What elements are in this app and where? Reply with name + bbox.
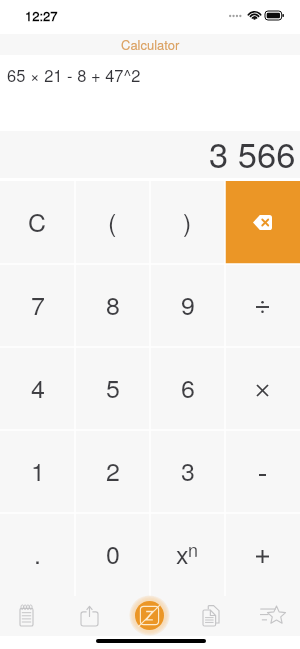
button[interactable]: Divide [225, 264, 300, 347]
button[interactable]: 9 [150, 264, 225, 347]
staticText: 5 [106, 369, 120, 405]
button[interactable]: 2 [75, 430, 150, 513]
button[interactable]: Minus [225, 430, 300, 513]
button[interactable]: 5 [75, 347, 150, 430]
staticText: 1 [31, 452, 45, 488]
staticText: 3 [181, 452, 195, 488]
button[interactable]: Plus [225, 513, 300, 596]
button[interactable]: Documents [190, 595, 232, 635]
staticText: n [188, 536, 199, 562]
button[interactable]: 8 [75, 264, 150, 347]
staticText: 7 [31, 286, 45, 322]
button[interactable]: 0 [75, 513, 150, 596]
other: Plus [256, 550, 269, 563]
staticText: 3 566 [209, 128, 296, 175]
other: Backspace [253, 215, 272, 230]
button[interactable]: Calculator [130, 596, 169, 635]
button[interactable]: 7 [0, 264, 75, 347]
staticText: C [28, 203, 47, 239]
other: Divide [256, 301, 269, 313]
staticText: x [176, 535, 189, 571]
staticText: 6 [181, 369, 195, 405]
button[interactable]: ( [75, 181, 150, 264]
staticText: 65 × 21 - 8 + 47^2 [7, 63, 141, 87]
button[interactable]: 1 [0, 430, 75, 513]
button[interactable]: 6 [150, 347, 225, 430]
button[interactable]: . [0, 513, 75, 596]
staticText: . [34, 535, 41, 571]
button[interactable]: Share [68, 596, 110, 636]
button[interactable]: 3 [150, 430, 225, 513]
button[interactable]: Favorites [252, 595, 294, 635]
staticText: 8 [106, 286, 120, 322]
staticText: 2 [106, 452, 120, 488]
button[interactable]: Backspace [225, 181, 300, 264]
button[interactable]: x [150, 513, 225, 596]
button[interactable]: 4 [0, 347, 75, 430]
staticText: ( [108, 203, 117, 239]
staticText: 0 [106, 535, 120, 571]
button[interactable]: Notes [5, 596, 47, 636]
other: Multiply [257, 385, 268, 396]
staticText: Calculator [121, 35, 180, 54]
button[interactable]: Multiply [225, 347, 300, 430]
button[interactable]: C [0, 181, 75, 264]
staticText: 12:27 [25, 6, 58, 25]
staticText: 4 [31, 369, 45, 405]
staticText: 9 [181, 286, 195, 322]
button[interactable]: ) [150, 181, 225, 264]
staticText: ) [183, 203, 192, 239]
